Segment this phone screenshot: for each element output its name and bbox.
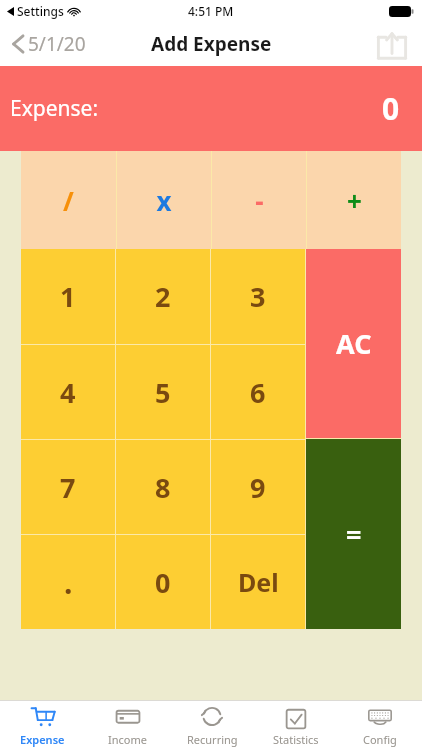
staticText: / xyxy=(63,183,74,218)
button[interactable]: - xyxy=(212,151,306,249)
button[interactable]: 3 xyxy=(211,249,305,344)
staticText: 3 xyxy=(250,278,266,315)
button[interactable]: Config xyxy=(338,701,422,750)
button[interactable]: 8 xyxy=(116,440,210,534)
button[interactable]: 7 xyxy=(21,440,115,534)
button[interactable]: . xyxy=(21,535,115,629)
staticText: + xyxy=(347,183,362,218)
staticText: AC xyxy=(336,325,372,362)
button[interactable]: Statistics xyxy=(254,701,338,750)
button[interactable]: Income xyxy=(85,701,170,750)
staticText: Recurring xyxy=(187,732,238,747)
staticText: 9 xyxy=(250,469,266,506)
button[interactable]: + xyxy=(307,151,401,249)
button[interactable]: Del xyxy=(211,535,305,629)
staticText: Statistics xyxy=(273,732,319,747)
staticText: - xyxy=(255,183,264,218)
staticText: 8 xyxy=(155,469,171,506)
staticText: 5 xyxy=(155,374,171,411)
button[interactable]: 9 xyxy=(211,440,305,534)
staticText: 2 xyxy=(155,278,171,315)
button[interactable]: 1 xyxy=(21,249,115,344)
staticText: Config xyxy=(363,732,397,747)
button[interactable]: 5/1/20 xyxy=(10,27,88,61)
staticText: 0 xyxy=(382,88,400,129)
button[interactable]: Share xyxy=(375,27,409,61)
button[interactable]: = xyxy=(306,439,401,629)
button[interactable]: / xyxy=(21,151,116,249)
button[interactable]: Expense xyxy=(0,701,85,750)
staticText: 0 xyxy=(155,564,171,601)
staticText: x xyxy=(156,183,172,218)
button[interactable]: AC xyxy=(306,249,401,438)
staticText: Expense: xyxy=(10,94,99,123)
button[interactable]: 0 xyxy=(116,535,210,629)
staticText: Add Expense xyxy=(151,31,272,57)
button[interactable]: 6 xyxy=(211,345,305,439)
staticText: Expense xyxy=(20,732,65,747)
staticText: Income xyxy=(108,732,147,747)
button[interactable]: 4 xyxy=(21,345,115,439)
staticText: . xyxy=(64,562,73,603)
staticText: Del xyxy=(238,565,279,599)
staticText: 1 xyxy=(60,278,76,315)
button[interactable]: Recurring xyxy=(170,701,254,750)
staticText: 6 xyxy=(250,374,266,411)
staticText: = xyxy=(346,516,362,553)
staticText: 4:51 PM xyxy=(188,3,234,19)
staticText: 7 xyxy=(60,469,76,506)
button[interactable]: x xyxy=(117,151,211,249)
button[interactable]: 2 xyxy=(116,249,210,344)
staticText: 5/1/20 xyxy=(28,31,86,57)
staticText: Settings xyxy=(17,3,64,19)
button[interactable]: 5 xyxy=(116,345,210,439)
staticText: 4 xyxy=(60,374,76,411)
